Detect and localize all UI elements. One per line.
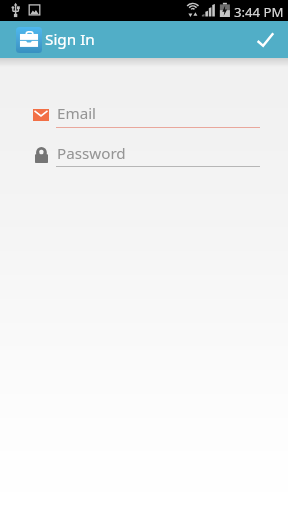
staticText: 3:44 PM xyxy=(234,3,284,21)
button[interactable]: Done xyxy=(243,21,287,58)
button[interactable]: Password xyxy=(0,143,288,173)
staticText: Password xyxy=(57,143,126,164)
staticText: Email xyxy=(57,103,97,124)
staticText: Sign In xyxy=(45,29,95,50)
button[interactable]: App icon xyxy=(16,27,42,53)
button[interactable]: Email xyxy=(0,103,288,133)
